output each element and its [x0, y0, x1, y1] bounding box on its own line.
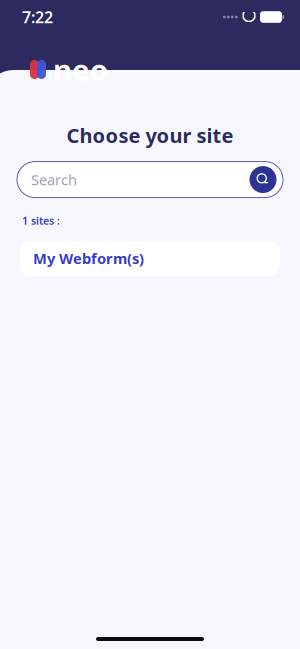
- staticText: Choose your site: [66, 122, 233, 149]
- staticText: 1 sites :: [22, 214, 60, 228]
- staticText: Search: [31, 170, 77, 189]
- staticText: My Webform(s): [33, 248, 144, 268]
- staticText: 7:22: [22, 6, 53, 28]
- button[interactable]: Search: [247, 164, 279, 196]
- staticText: neo: [53, 50, 108, 89]
- button[interactable]: My Webform(s): [20, 241, 280, 276]
